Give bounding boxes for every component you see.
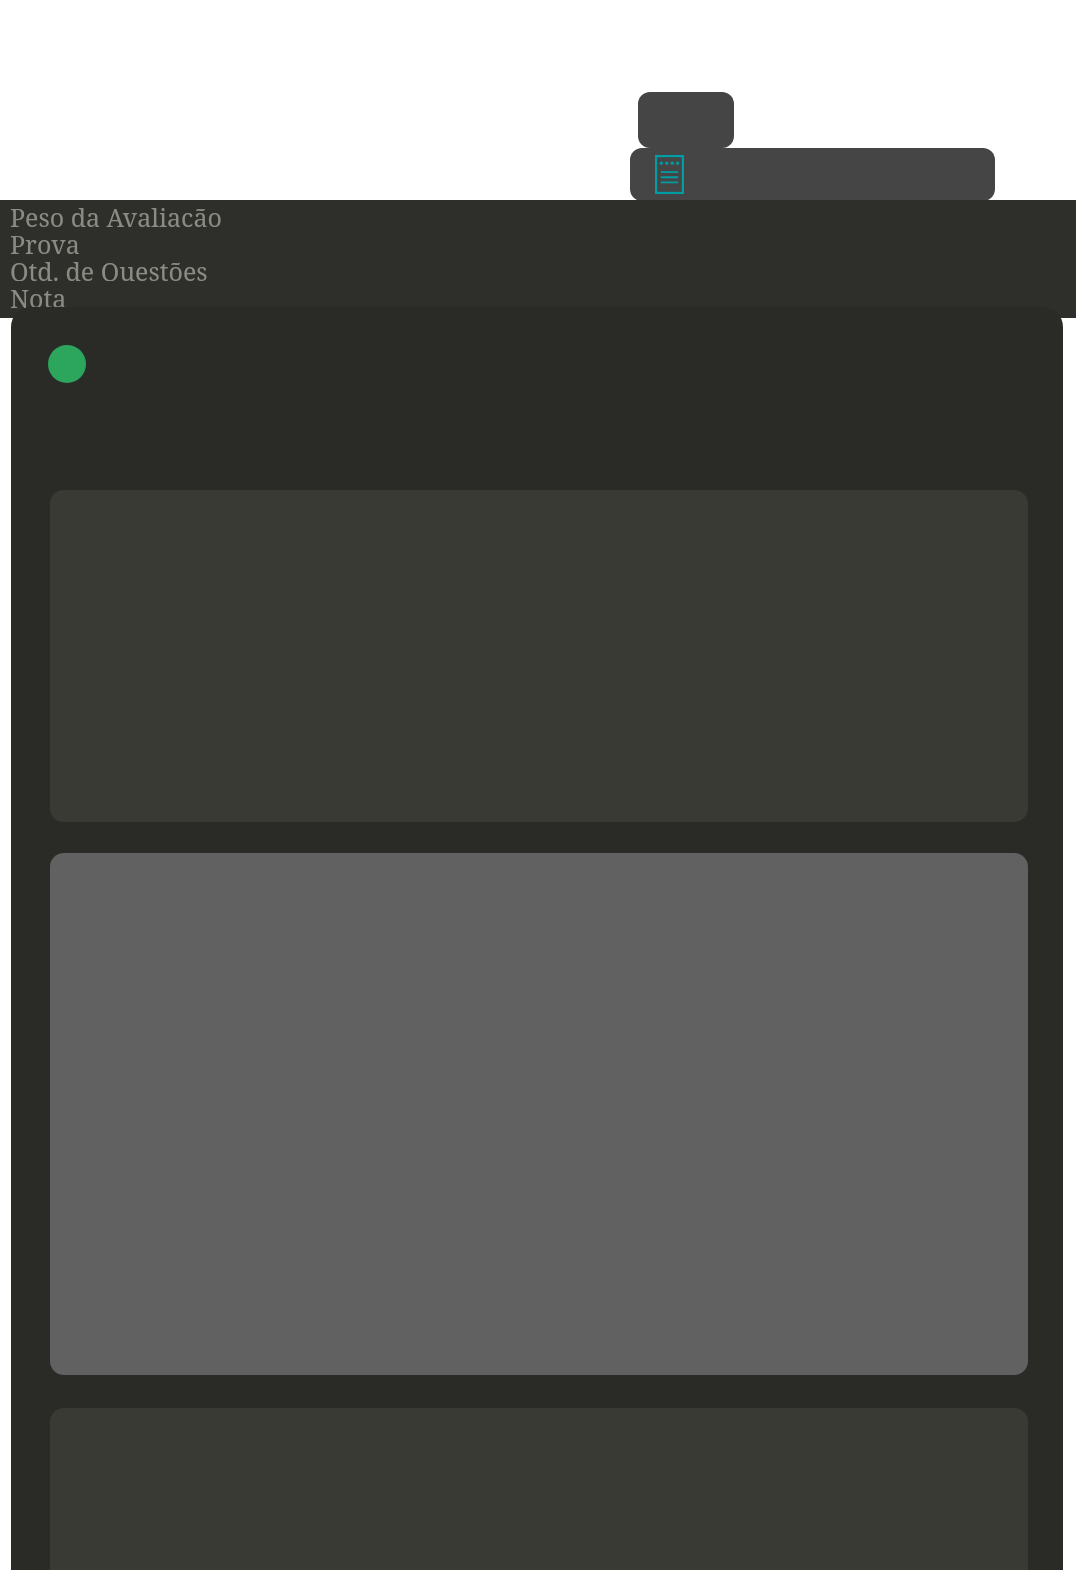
staticText: Qtd. de Questões <box>10 254 208 281</box>
staticText: Peso da Avaliação <box>10 200 222 227</box>
staticText: Nota <box>10 281 67 308</box>
button[interactable]: Status <box>48 345 86 383</box>
button[interactable]: Menu <box>638 92 734 148</box>
staticText: Prova <box>10 227 80 254</box>
button[interactable]: Avaliação <box>630 148 995 201</box>
